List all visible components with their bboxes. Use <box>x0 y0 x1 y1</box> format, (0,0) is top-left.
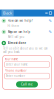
button[interactable]: Back <box>1 10 14 16</box>
staticText: Almost done <box>7 41 26 45</box>
staticText: ✎ <box>48 30 51 34</box>
staticText: Call me <box>21 83 33 86</box>
staticText: Enter number <box>6 74 25 78</box>
staticText: ✎ <box>48 18 51 23</box>
staticText: Ways we can help <box>7 30 30 34</box>
staticText: Tell us a bit about you so we can call y… <box>3 47 48 54</box>
staticText: Back <box>3 10 12 16</box>
staticText: Your name <box>4 57 18 61</box>
staticText: Phone number <box>4 69 26 72</box>
button[interactable]: Close <box>48 11 52 15</box>
button[interactable]: Call me <box>16 81 38 87</box>
button[interactable]: Edit <box>48 19 52 23</box>
staticText: Hi there <box>7 24 19 28</box>
staticText: How can we help? <box>7 19 32 22</box>
staticText: We'll call you <box>7 35 24 39</box>
staticText: Enter your name <box>6 63 28 66</box>
button[interactable]: Minimize <box>44 11 48 15</box>
button[interactable]: Edit <box>48 30 52 34</box>
